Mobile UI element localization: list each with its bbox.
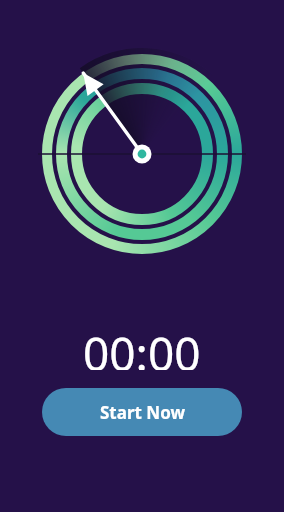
staticText: 00:00 <box>83 322 201 370</box>
button[interactable]: Start Now <box>42 388 242 436</box>
staticText: Start Now <box>100 401 185 424</box>
